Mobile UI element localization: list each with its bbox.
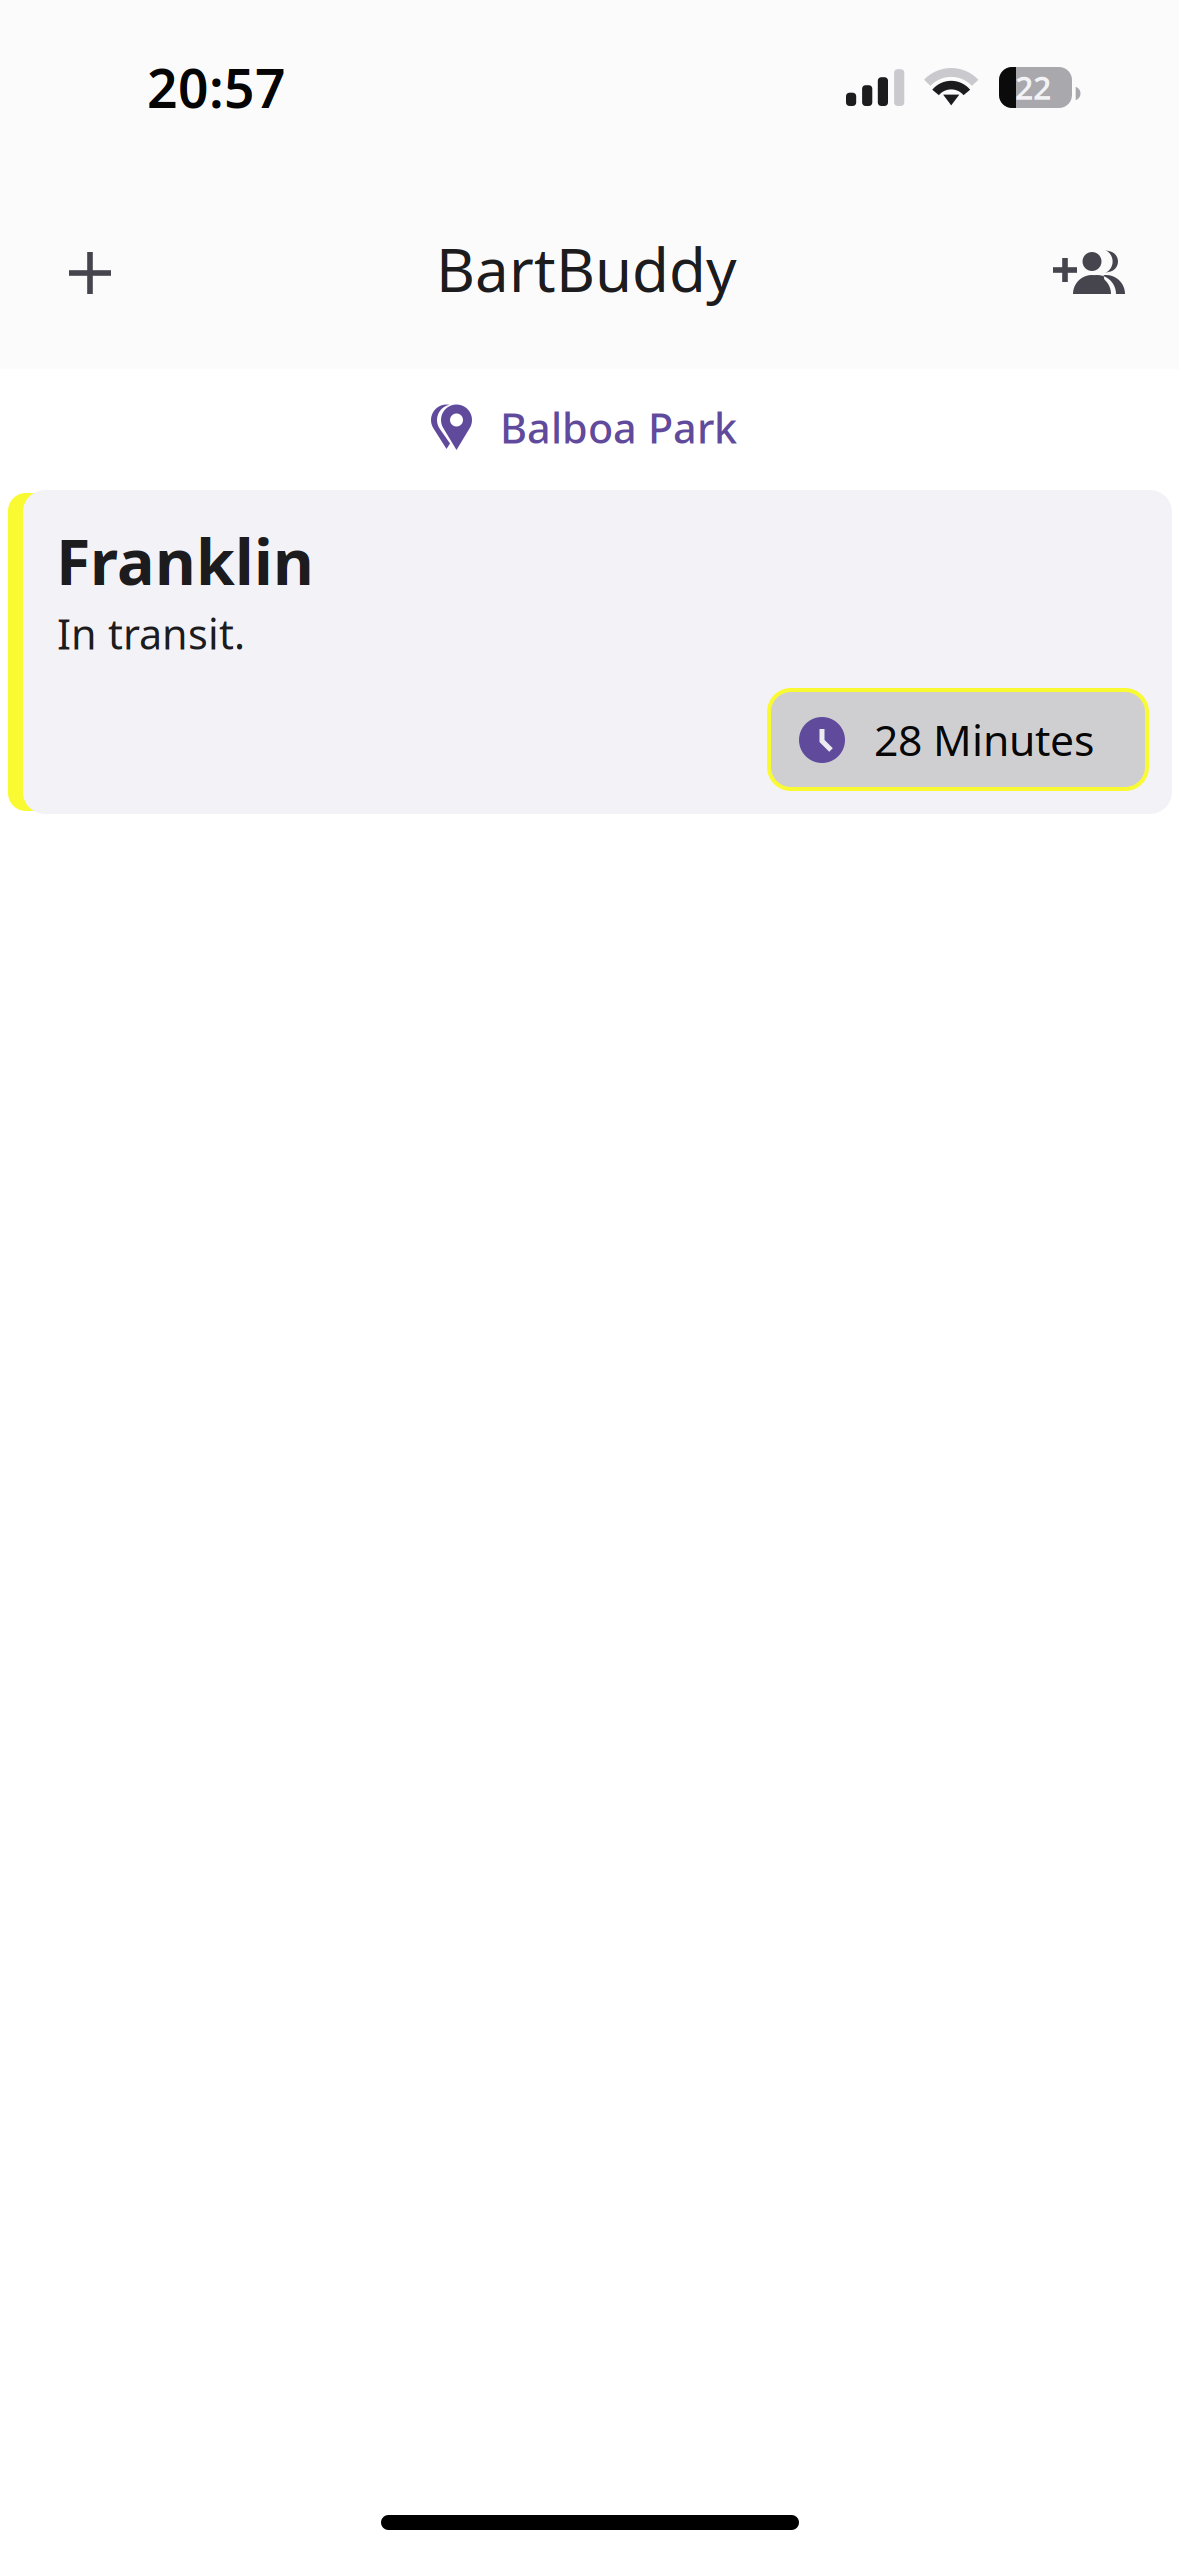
staticText: In transit. <box>57 606 245 661</box>
staticText: BartBuddy <box>436 229 737 309</box>
staticText: Balboa Park <box>500 400 737 455</box>
staticText: 22 <box>1015 66 1051 108</box>
button[interactable]: Add friend <box>1031 217 1143 329</box>
button[interactable]: 28 Minutes <box>769 690 1147 789</box>
staticText: 20:57 <box>147 52 286 123</box>
button[interactable]: Add <box>35 217 147 329</box>
staticText: 28 Minutes <box>874 711 1094 768</box>
staticText: Franklin <box>56 519 314 602</box>
